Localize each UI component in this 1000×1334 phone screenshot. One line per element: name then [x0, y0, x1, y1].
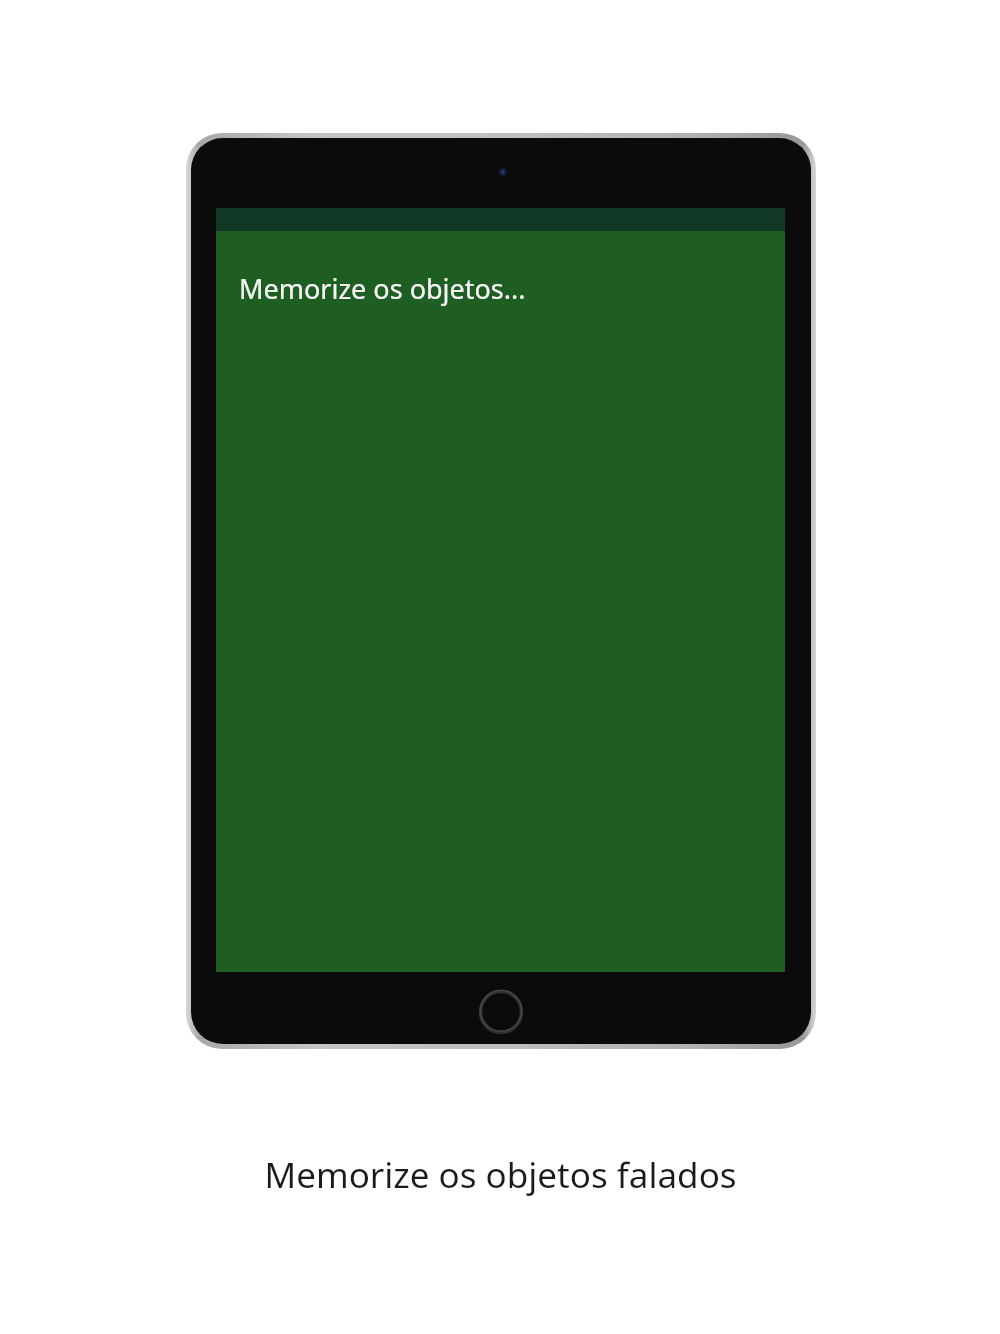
staticText: Memorize os objetos falados	[264, 1151, 737, 1199]
button[interactable]: Home	[478, 989, 524, 1035]
staticText: Memorize os objetos...	[239, 270, 526, 307]
